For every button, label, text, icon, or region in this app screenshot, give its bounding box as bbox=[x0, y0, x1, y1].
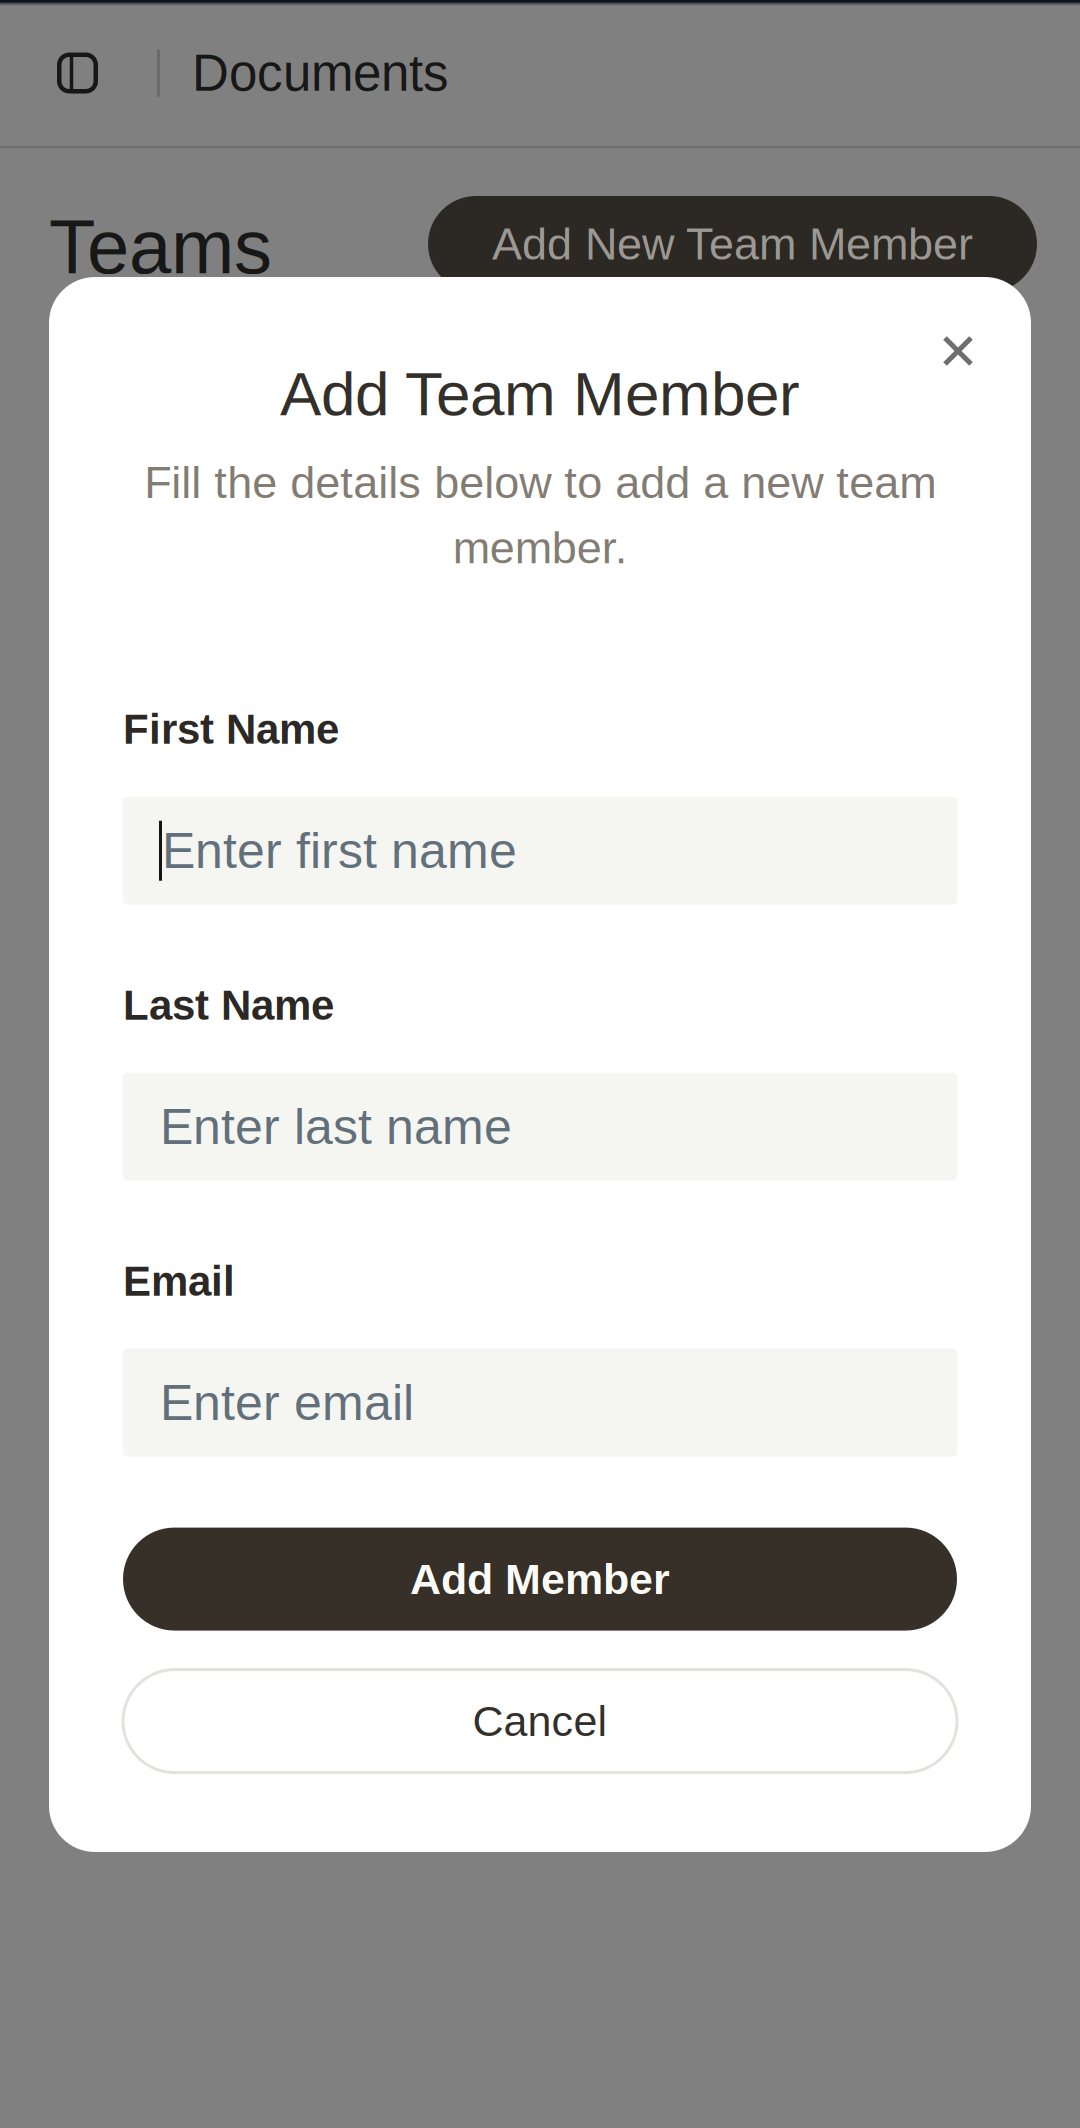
button[interactable]: Add Member bbox=[123, 1528, 957, 1631]
staticText: Add Member bbox=[410, 1555, 670, 1603]
staticText: Enter email bbox=[160, 1375, 414, 1430]
button[interactable]: Toggle sidebar bbox=[0, 6, 157, 140]
staticText: Documents bbox=[192, 44, 449, 101]
staticText: Add Team Member bbox=[280, 359, 800, 428]
staticText: Add New Team Member bbox=[492, 219, 973, 269]
staticText: Enter first name bbox=[162, 823, 517, 879]
staticText: Email bbox=[123, 1258, 235, 1305]
button[interactable]: Close bbox=[923, 316, 993, 386]
staticText: Last Name bbox=[123, 982, 334, 1029]
staticText: Fill the details below to add a new team… bbox=[144, 457, 936, 573]
staticText: Teams bbox=[49, 204, 272, 289]
button[interactable]: Cancel bbox=[123, 1670, 957, 1773]
staticText: Enter last name bbox=[160, 1099, 512, 1155]
staticText: First Name bbox=[123, 706, 339, 753]
button[interactable]: Add New Team Member bbox=[428, 196, 1037, 292]
staticText: Cancel bbox=[472, 1697, 607, 1745]
